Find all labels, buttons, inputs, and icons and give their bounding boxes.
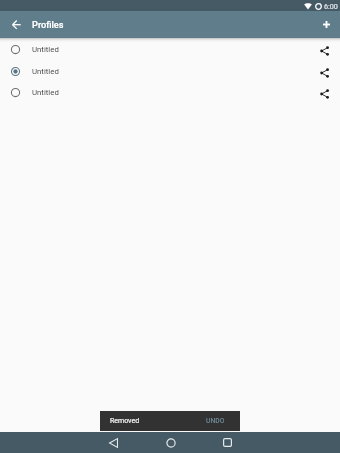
staticText: Untitled <box>32 67 59 76</box>
staticText: Removed <box>110 417 140 425</box>
button[interactable]: Untitled <box>0 82 340 103</box>
button[interactable]: Recent apps <box>199 432 256 453</box>
staticText: Profiles <box>32 19 64 30</box>
button[interactable]: Share <box>314 39 335 60</box>
button[interactable]: Share <box>314 61 335 82</box>
button[interactable]: Share <box>314 82 335 103</box>
button[interactable]: Removed <box>100 411 240 431</box>
button[interactable]: UNDO <box>206 417 225 425</box>
button[interactable]: Add profile <box>314 11 338 38</box>
button[interactable]: Home <box>142 432 199 453</box>
button[interactable]: Navigate up <box>12 11 21 38</box>
staticText: Untitled <box>32 88 59 97</box>
staticText: Untitled <box>32 45 59 54</box>
staticText: 6:00 <box>324 2 338 10</box>
button[interactable]: Back <box>85 432 142 453</box>
staticText: UNDO <box>206 417 225 425</box>
button[interactable]: Untitled <box>0 61 340 82</box>
button[interactable]: Untitled <box>0 39 340 60</box>
